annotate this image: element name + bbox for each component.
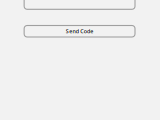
button[interactable]: Send Code <box>24 25 135 37</box>
staticText: Send Code <box>66 28 93 35</box>
